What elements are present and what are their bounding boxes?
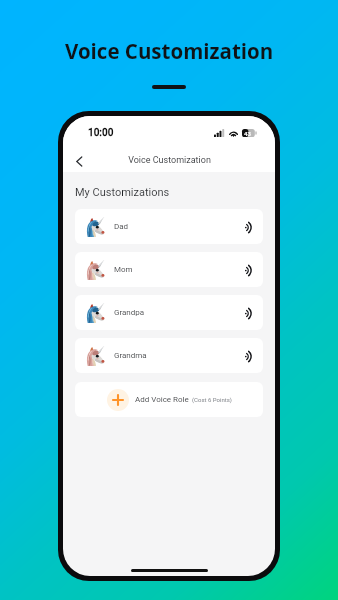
button[interactable]: Play voice [239, 346, 259, 366]
staticText: Add Voice Role [135, 395, 189, 404]
staticText: 43 [244, 130, 251, 137]
staticText: Voice Customization [65, 37, 274, 65]
button[interactable]: Mom [75, 252, 263, 287]
button[interactable]: Grandma [75, 338, 263, 373]
staticText: Dad [114, 222, 129, 231]
button[interactable]: Play voice [239, 303, 259, 323]
button[interactable]: Dad [75, 209, 263, 244]
staticText: Grandpa [114, 308, 145, 317]
button[interactable]: Play voice [239, 260, 259, 280]
staticText: 10:00 [88, 127, 114, 139]
button[interactable]: Play voice [239, 217, 259, 237]
staticText: Grandma [114, 351, 147, 360]
button[interactable]: Grandpa [75, 295, 263, 330]
staticText: My Customizations [75, 186, 170, 199]
button[interactable]: Back [68, 150, 90, 172]
staticText: Mom [114, 265, 133, 274]
button[interactable]: Add Voice Role [75, 382, 263, 417]
staticText: Voice Customization [128, 155, 211, 166]
staticText: (Cost 6 Points) [192, 396, 232, 403]
